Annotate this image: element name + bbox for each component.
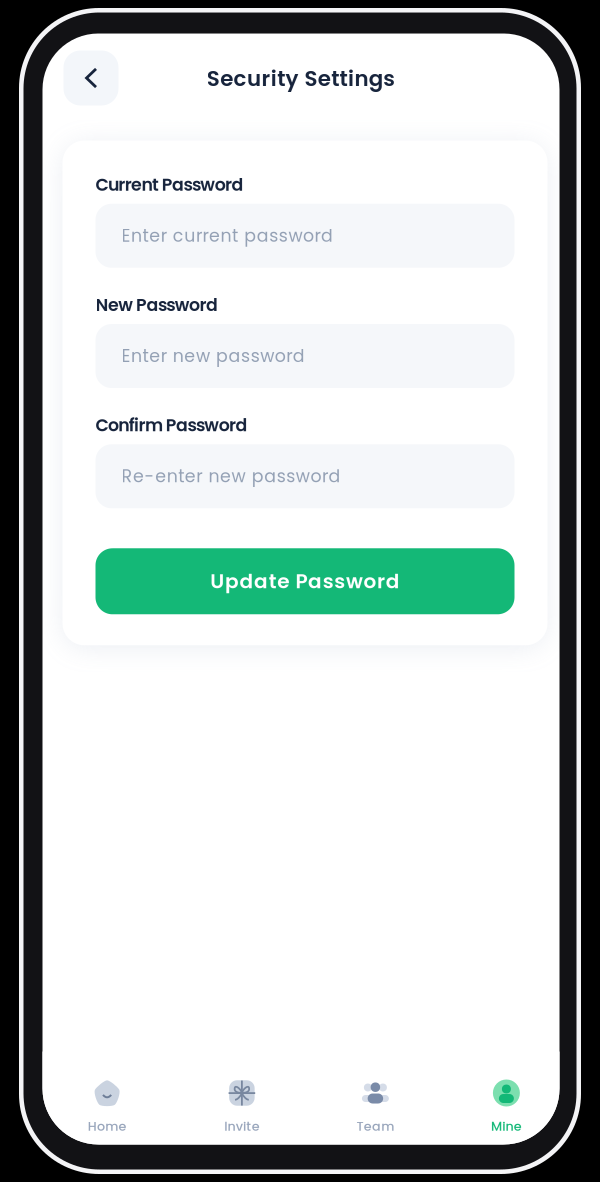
- button[interactable]: Team: [316, 1051, 434, 1153]
- staticText: Enter current password: [121, 224, 333, 248]
- staticText: Confirm Password: [95, 413, 247, 437]
- staticText: Re-enter new password: [121, 464, 340, 488]
- staticText: New Password: [95, 293, 218, 317]
- staticText: Invite: [224, 1117, 260, 1135]
- staticText: Enter new password: [121, 344, 305, 368]
- staticText: Mine: [491, 1117, 522, 1135]
- button[interactable]: Back: [63, 50, 118, 105]
- staticText: Team: [356, 1117, 394, 1135]
- button[interactable]: Update Password: [95, 548, 514, 614]
- button[interactable]: Invite: [183, 1051, 301, 1153]
- staticText: Security Settings: [207, 63, 395, 93]
- staticText: Update Password: [210, 567, 400, 595]
- staticText: Current Password: [95, 172, 243, 197]
- button[interactable]: Mine: [447, 1051, 565, 1153]
- button[interactable]: Home: [48, 1051, 166, 1153]
- staticText: Home: [88, 1117, 127, 1135]
